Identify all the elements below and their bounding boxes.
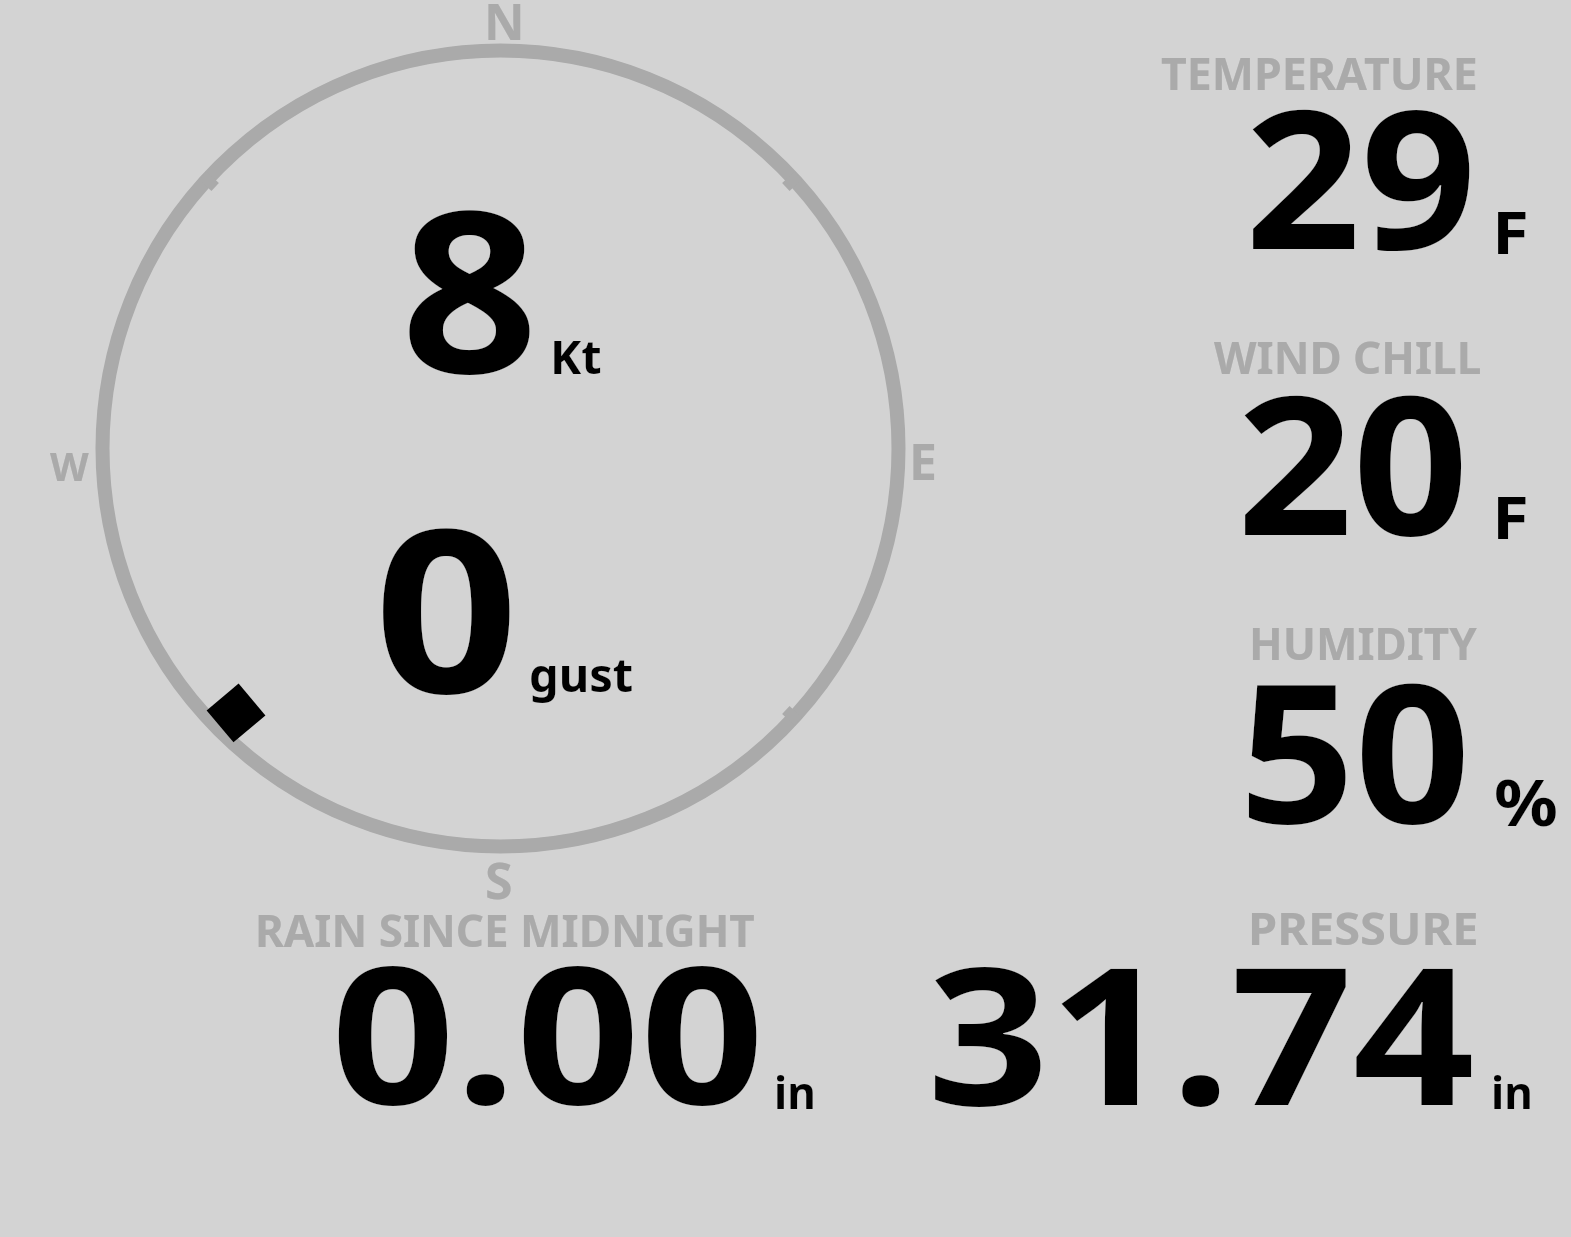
staticText: HUMIDITY [1249, 613, 1477, 673]
staticText: F [1492, 190, 1529, 272]
staticText: E [909, 427, 937, 495]
staticText: in [774, 1062, 816, 1122]
staticText: RAIN SINCE MIDNIGHT [255, 900, 755, 960]
staticText: 20 [1237, 329, 1469, 592]
staticText: S [485, 846, 513, 914]
button[interactable]: Rain since midnight 0.00 inches [250, 888, 830, 1130]
staticText: 0 [374, 451, 520, 759]
staticText: F [1492, 475, 1529, 557]
staticText: 0.00 [331, 900, 765, 1160]
staticText: % [1494, 757, 1558, 846]
button[interactable]: Pressure 31.74 inches [900, 888, 1500, 1130]
staticText: TEMPERATURE [1161, 43, 1478, 103]
staticText: in [1491, 1062, 1533, 1122]
staticText: N [484, 0, 525, 55]
staticText: Kt [550, 324, 602, 388]
button[interactable]: Wind chill 20 F [1157, 315, 1571, 560]
staticText: gust [529, 642, 634, 706]
staticText: 29 [1245, 43, 1477, 306]
staticText: 31.74 [927, 901, 1475, 1161]
staticText: 8 [401, 134, 539, 439]
staticText: W [50, 438, 89, 492]
staticText: WIND CHILL [1214, 327, 1482, 387]
button[interactable]: Humidity 50 percent [1157, 600, 1571, 846]
button[interactable]: Wind direction dial [86, 34, 914, 862]
button[interactable]: Temperature 29 F [1157, 30, 1571, 305]
staticText: PRESSURE [1248, 898, 1479, 958]
staticText: 50 [1239, 617, 1471, 880]
